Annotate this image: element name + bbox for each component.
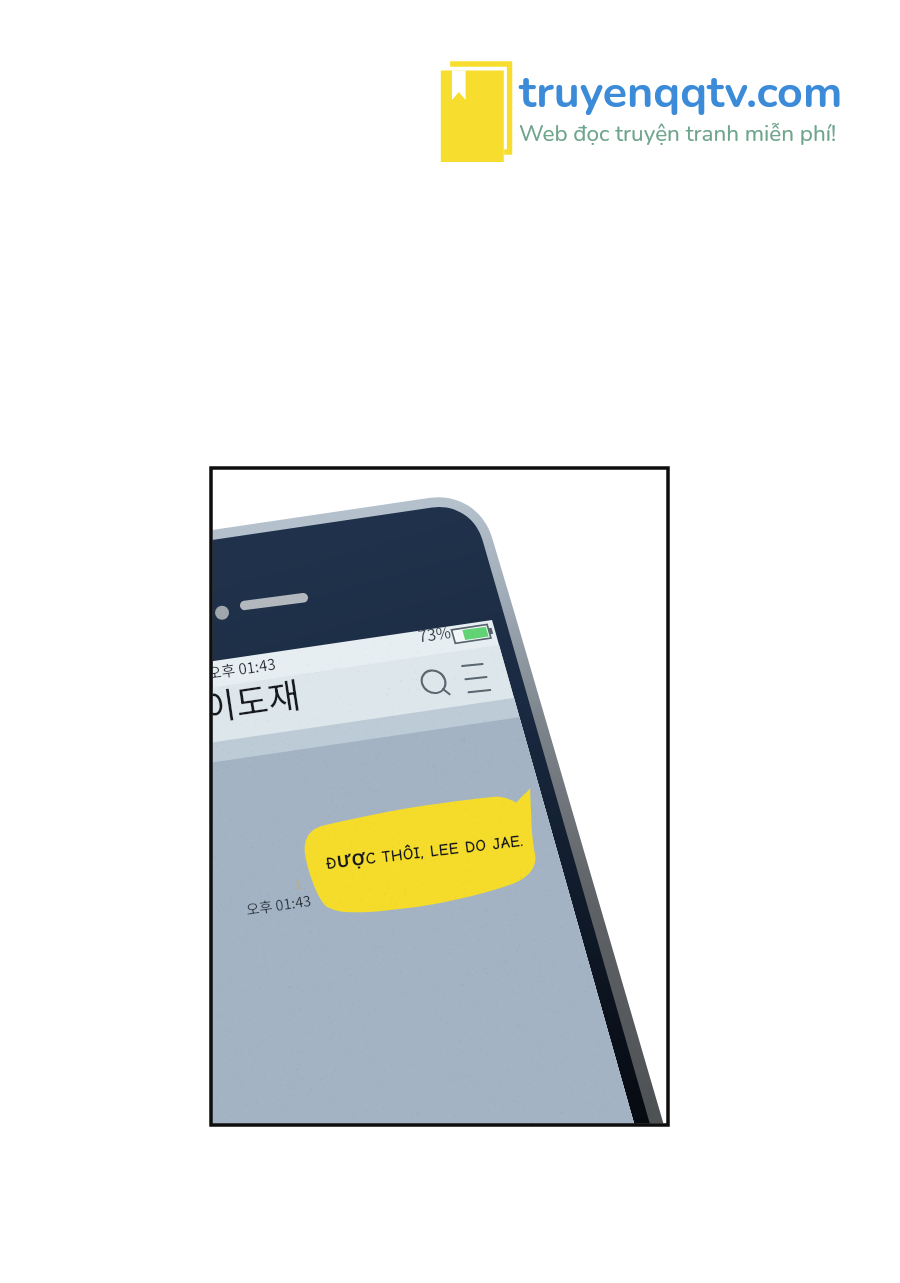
button[interactable] (437, 55, 852, 159)
